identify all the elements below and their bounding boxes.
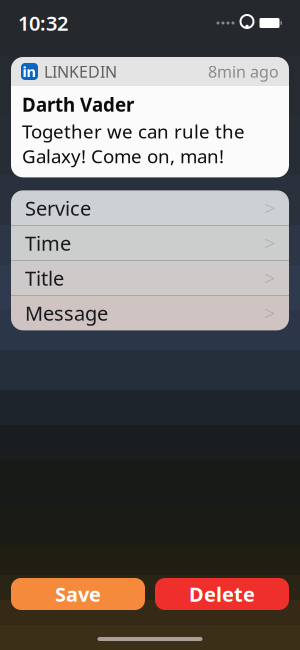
- button[interactable]: Service: [11, 190, 289, 225]
- staticText: >: [264, 300, 275, 326]
- staticText: 8min ago: [208, 61, 279, 82]
- button[interactable]: Delete: [155, 578, 289, 610]
- staticText: Message: [25, 300, 108, 326]
- staticText: Title: [25, 265, 64, 291]
- button[interactable]: Message: [11, 295, 289, 330]
- staticText: >: [264, 195, 275, 221]
- staticText: in: [22, 62, 36, 81]
- staticText: Service: [25, 195, 91, 221]
- staticText: Time: [25, 230, 71, 256]
- staticText: 10:32: [18, 10, 68, 36]
- staticText: Together we can rule the Galaxy! Come on…: [22, 119, 245, 168]
- staticText: LINKEDIN: [44, 61, 117, 82]
- staticText: Darth Vader: [22, 92, 134, 117]
- staticText: Save: [55, 581, 101, 607]
- staticText: >: [264, 230, 275, 256]
- staticText: Delete: [189, 581, 255, 607]
- staticText: >: [264, 265, 275, 291]
- button[interactable]: Time: [11, 225, 289, 260]
- button[interactable]: Title: [11, 260, 289, 295]
- button[interactable]: Save: [11, 578, 145, 610]
